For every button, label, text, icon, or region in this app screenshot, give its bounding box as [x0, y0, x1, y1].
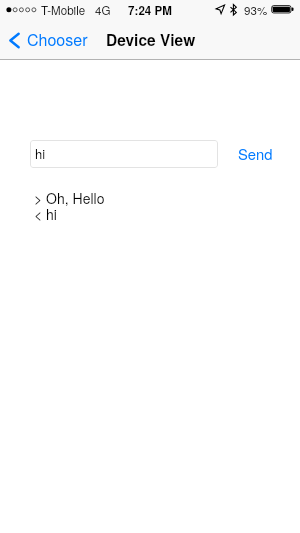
staticText: Send: [238, 143, 273, 164]
staticText: 4G: [95, 2, 111, 19]
button[interactable]: Back to Chooser: [0, 22, 98, 59]
staticText: Device View: [106, 29, 196, 51]
button[interactable]: hi: [30, 140, 218, 168]
staticText: Chooser: [27, 28, 88, 51]
staticText: T-Mobile: [41, 2, 86, 19]
button[interactable]: Send: [232, 137, 279, 170]
staticText: 93%: [244, 2, 268, 19]
staticText: hi: [35, 144, 46, 163]
staticText: 7:24 PM: [0, 2, 300, 19]
staticText: > Oh, Hello < hi: [34, 188, 105, 224]
